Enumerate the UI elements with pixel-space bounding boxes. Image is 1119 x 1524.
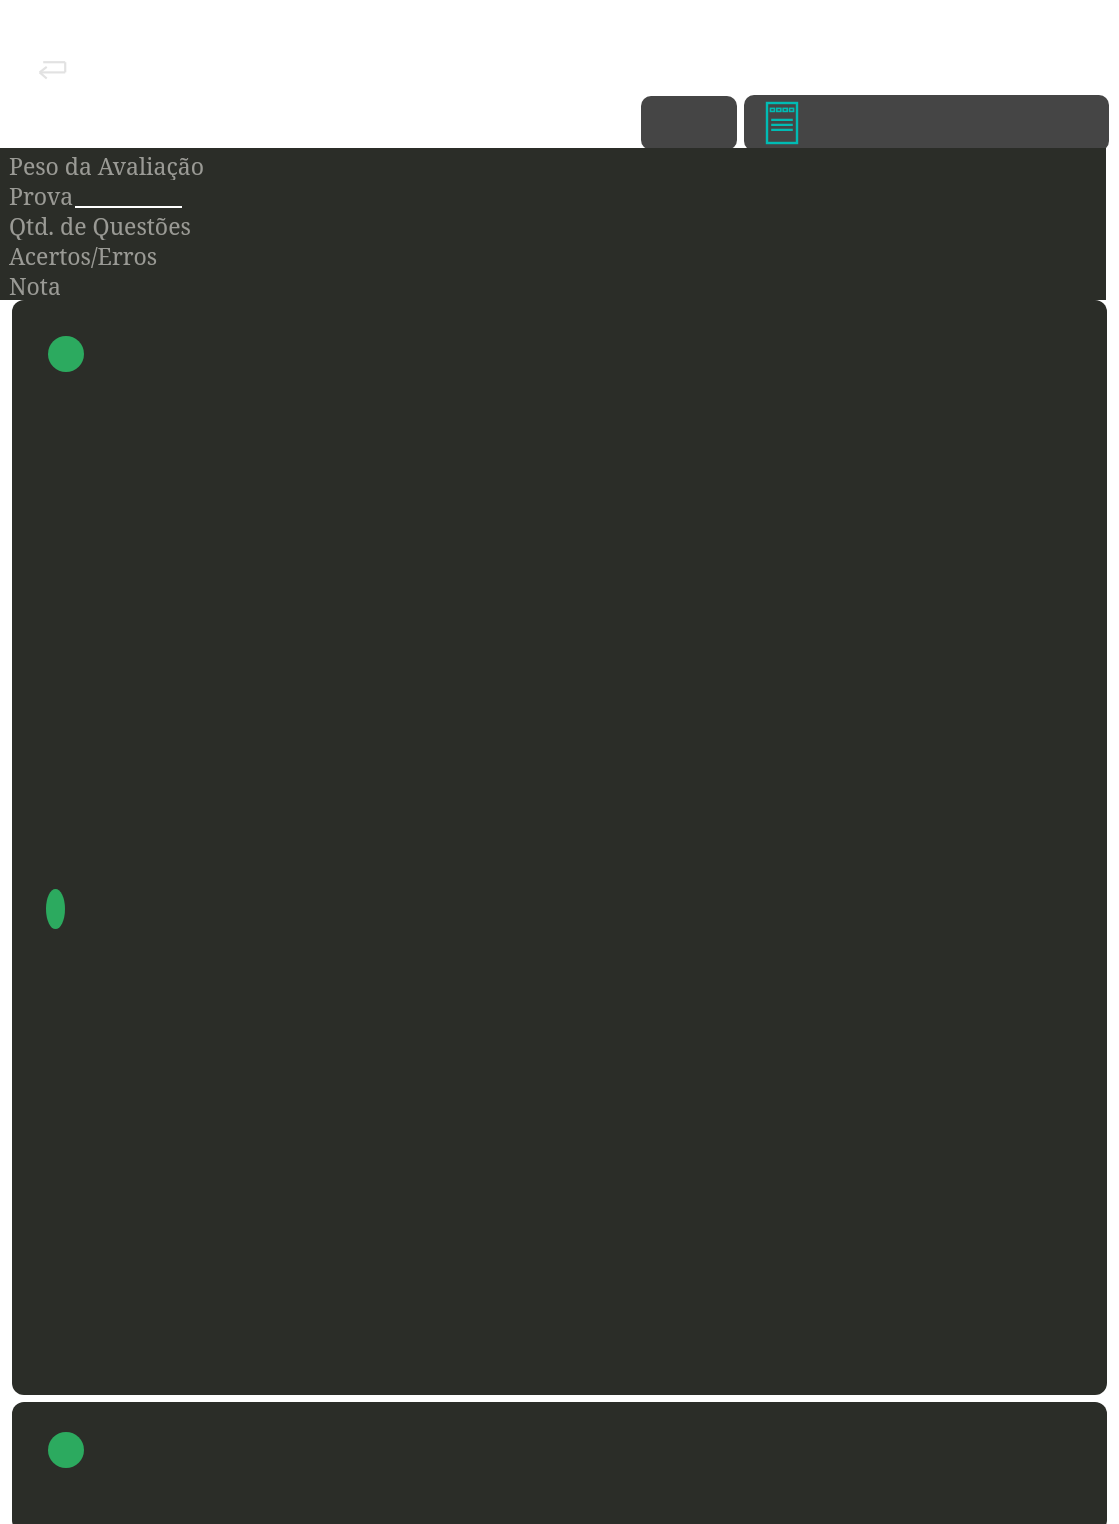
- button[interactable]: [12, 300, 1107, 1395]
- staticText: Prova: [9, 180, 74, 210]
- staticText: Peso da Avaliação: [9, 150, 204, 180]
- button[interactable]: [12, 1402, 1107, 1524]
- staticText: Nota: [9, 270, 61, 300]
- button[interactable]: Ação: [641, 96, 737, 150]
- staticText: Qtd. de Questões: [9, 210, 191, 240]
- button[interactable]: Relatório: [744, 95, 1109, 151]
- button[interactable]: Voltar: [30, 52, 74, 86]
- staticText: Acertos/Erros: [9, 240, 158, 270]
